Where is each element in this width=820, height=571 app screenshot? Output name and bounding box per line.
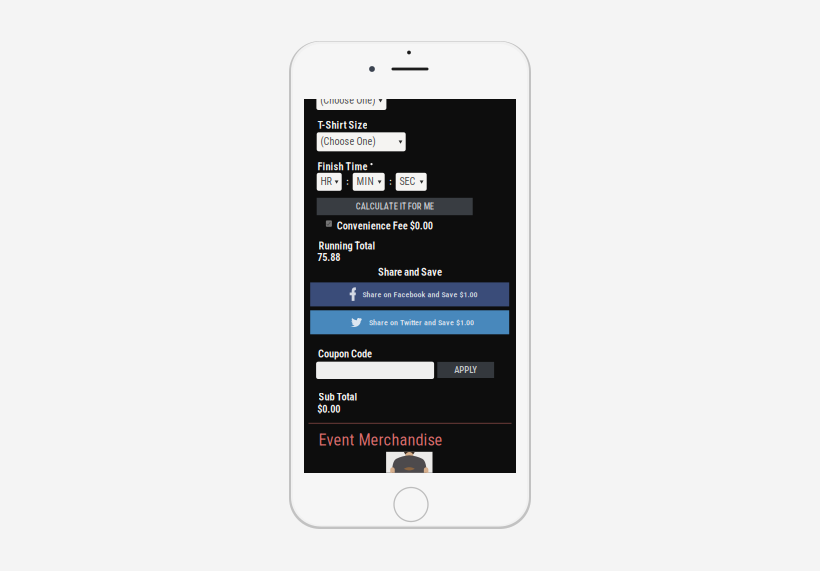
button[interactable]: CALCULATE IT FOR ME — [317, 198, 473, 215]
button[interactable]: HR — [317, 173, 342, 191]
staticText: (Choose One) — [320, 94, 375, 106]
staticText: 75.88 — [317, 251, 340, 264]
button[interactable]: Coupon code — [316, 362, 434, 379]
staticText: Share on Facebook and Save $1.00 — [362, 290, 477, 299]
button[interactable]: MIN — [353, 173, 385, 191]
button[interactable]: Convenience fee — [326, 220, 332, 227]
staticText: $0.00 — [317, 403, 340, 415]
staticText: Convenience Fee $0.00 — [337, 220, 433, 232]
staticText: Event Merchandise — [318, 430, 442, 450]
staticText: Coupon Code — [318, 348, 372, 360]
button[interactable]: SEC — [396, 173, 427, 191]
staticText: Share and Save — [378, 266, 442, 278]
staticText: : — [346, 177, 348, 187]
staticText: Share on Twitter and Save $1.00 — [369, 318, 474, 327]
button[interactable]: APPLY — [437, 362, 494, 378]
staticText: SEC — [399, 176, 415, 188]
staticText: HR — [320, 176, 331, 188]
button[interactable]: (Choose One) — [317, 132, 406, 151]
button[interactable]: (Choose One) — [316, 91, 386, 110]
staticText: (Choose One) — [320, 136, 375, 148]
button[interactable]: Share on Facebook and Save $1.00 — [310, 282, 509, 306]
staticText: T-Shirt Size — [317, 119, 367, 131]
staticText: : — [389, 177, 391, 187]
button[interactable]: Share on Twitter and Save $1.00 — [310, 310, 509, 334]
staticText: Finish Time — [317, 160, 367, 173]
staticText: Running Total — [319, 240, 376, 252]
staticText: APPLY — [454, 365, 477, 375]
staticText: CALCULATE IT FOR ME — [356, 201, 434, 211]
staticText: MIN — [356, 176, 373, 188]
staticText: Sub Total — [319, 391, 358, 403]
